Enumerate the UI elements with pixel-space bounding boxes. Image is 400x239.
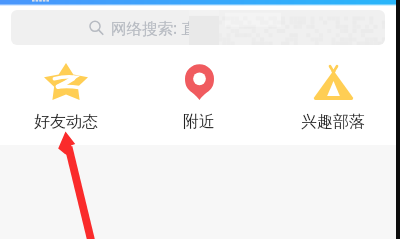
staticText: 附近: [183, 112, 215, 132]
staticText: 好友动态: [34, 112, 98, 132]
button[interactable]: 附近: [143, 56, 255, 134]
button[interactable]: 网络搜索: 直: [11, 10, 385, 45]
staticText: 兴趣部落: [301, 112, 365, 132]
staticText: 网络搜索: 直: [111, 17, 197, 38]
button[interactable]: 兴趣部落: [277, 56, 389, 134]
button[interactable]: 好友动态: [10, 56, 122, 134]
